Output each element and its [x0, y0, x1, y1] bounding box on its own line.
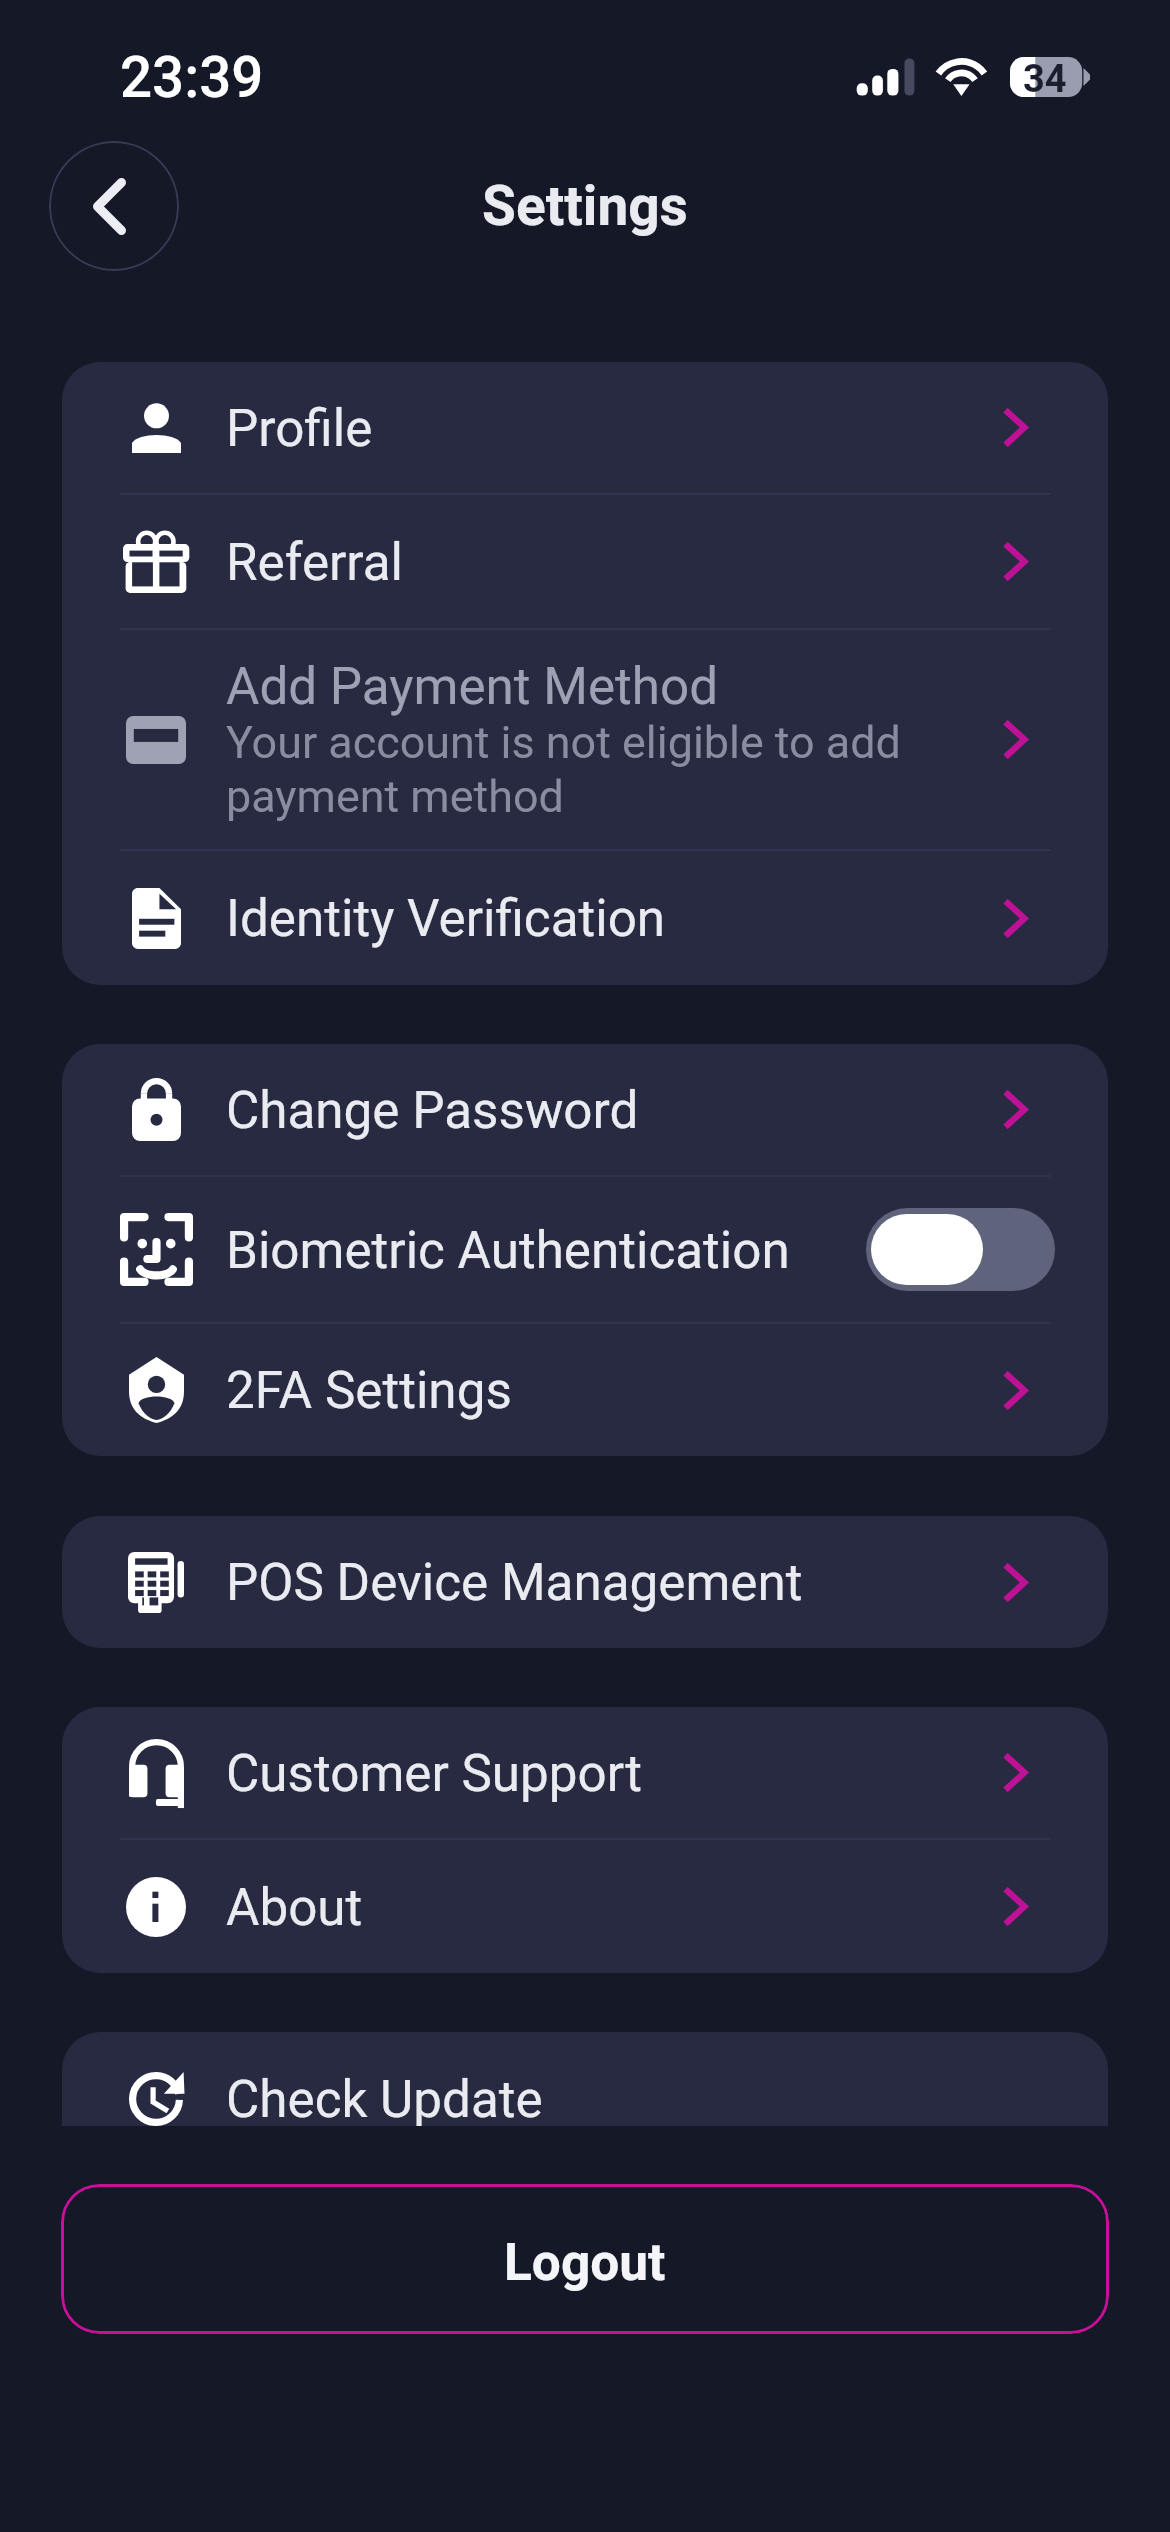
- other: Open: [1005, 1372, 1028, 1409]
- other: Open: [1005, 721, 1028, 758]
- staticText: Your account is not eligible to add paym…: [226, 716, 993, 823]
- button[interactable]: About: [62, 1840, 1108, 1973]
- staticText: Customer Support: [226, 1743, 643, 1803]
- staticText: Logout: [504, 2232, 666, 2292]
- other: Open: [1005, 543, 1028, 580]
- other: Open: [1005, 1754, 1028, 1791]
- button[interactable]: POS Device Management: [62, 1516, 1108, 1648]
- button[interactable]: Biometric Authentication toggle: [866, 1208, 1055, 1291]
- staticText: 23:39: [120, 45, 264, 111]
- staticText: Biometric Authentication: [226, 1220, 790, 1280]
- staticText: POS Device Management: [226, 1552, 803, 1612]
- other: Open: [1005, 900, 1028, 937]
- button[interactable]: Check Update: [62, 2032, 1108, 2126]
- button[interactable]: Biometric Authentication: [62, 1177, 1108, 1322]
- staticText: Identity Verification: [226, 888, 666, 948]
- staticText: About: [226, 1877, 363, 1937]
- other: Open: [1005, 1091, 1028, 1128]
- staticText: Check Update: [226, 2069, 543, 2126]
- button[interactable]: Referral: [62, 495, 1108, 628]
- staticText: 34: [1023, 57, 1067, 102]
- button[interactable]: Logout: [61, 2184, 1109, 2334]
- other: Open: [1005, 1564, 1028, 1601]
- staticText: 2FA Settings: [226, 1360, 512, 1420]
- staticText: Change Password: [226, 1080, 639, 1140]
- staticText: Referral: [226, 532, 404, 592]
- staticText: Profile: [226, 398, 373, 458]
- button[interactable]: 2FA Settings: [62, 1324, 1108, 1456]
- button[interactable]: Change Password: [62, 1044, 1108, 1175]
- button[interactable]: Profile: [62, 362, 1108, 493]
- other: Open: [1005, 409, 1028, 446]
- button[interactable]: Back: [49, 141, 179, 271]
- button[interactable]: Customer Support: [62, 1707, 1108, 1838]
- button[interactable]: Add Payment Method: [62, 630, 1108, 849]
- other: Open: [1005, 1888, 1028, 1925]
- staticText: Add Payment Method: [226, 656, 719, 716]
- staticText: Settings: [0, 174, 1170, 238]
- button[interactable]: Identity Verification: [62, 851, 1108, 985]
